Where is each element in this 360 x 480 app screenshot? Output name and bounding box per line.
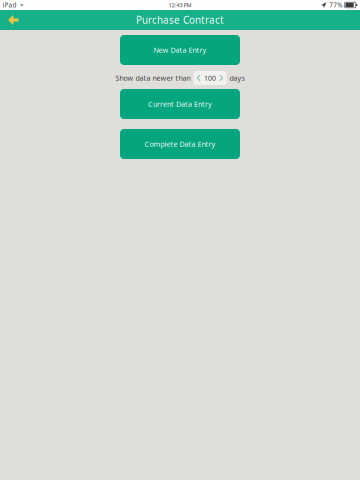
staticText: Show data newer than <box>115 73 190 83</box>
staticText: Current Data Entry <box>148 99 212 109</box>
staticText: days <box>230 73 245 83</box>
button[interactable]: Increase days <box>216 71 227 85</box>
button[interactable]: Complete Data Entry <box>120 129 240 159</box>
button[interactable]: Decrease days <box>193 71 203 85</box>
staticText: Complete Data Entry <box>144 139 215 149</box>
button[interactable]: Current Data Entry <box>120 89 240 119</box>
staticText: 12:43 PM <box>168 1 191 9</box>
staticText: 100 <box>204 73 216 83</box>
button[interactable]: Back <box>3 10 24 30</box>
staticText: Purchase Contract <box>136 13 224 27</box>
staticText: New Data Entry <box>153 45 206 55</box>
staticText: iPad <box>2 1 16 9</box>
staticText: 77% <box>329 1 342 9</box>
button[interactable]: New Data Entry <box>120 35 240 65</box>
